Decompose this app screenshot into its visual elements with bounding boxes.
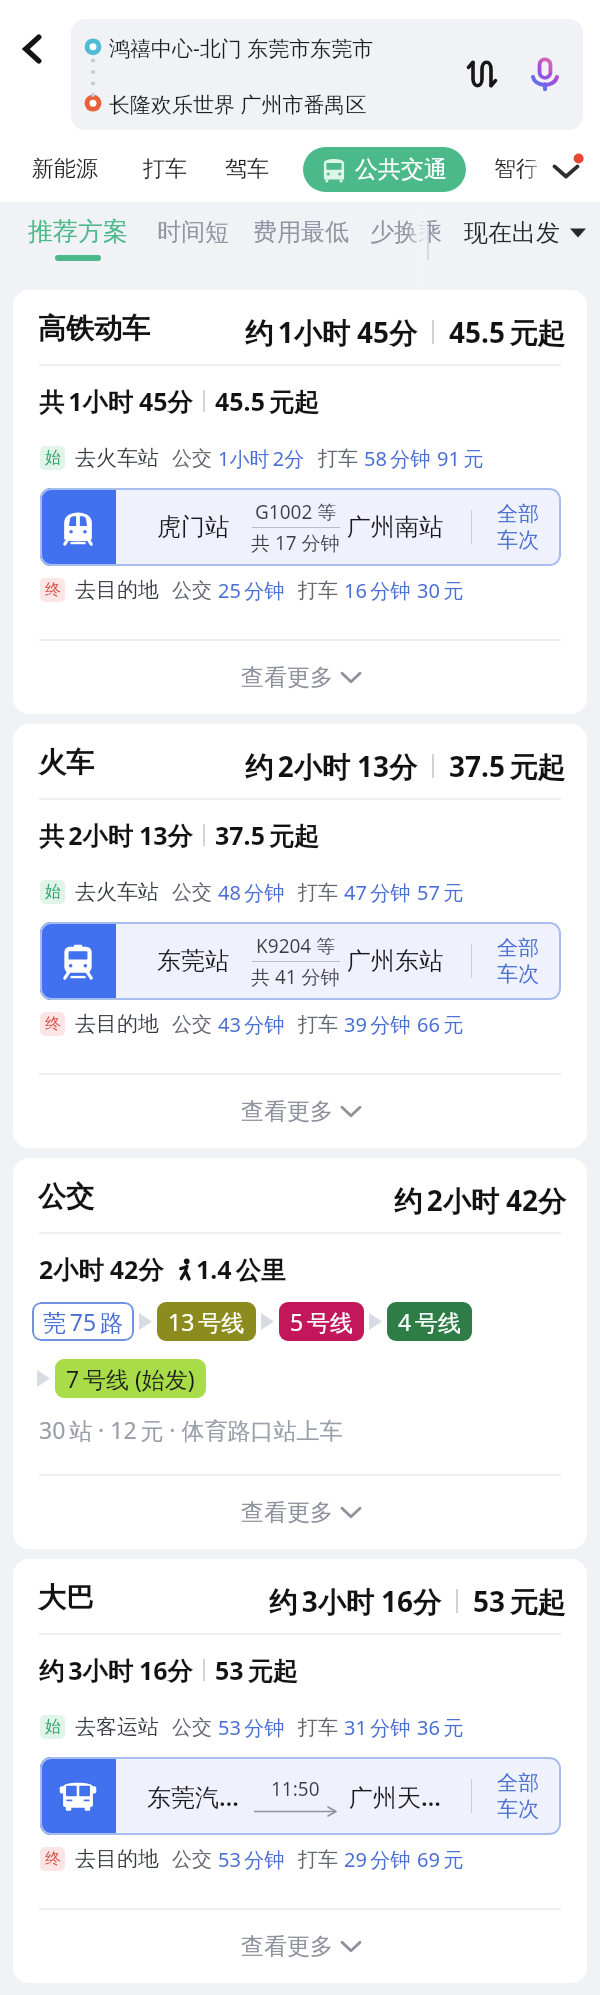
staticText: 30 站 · 12 元 · 体育路口站上车 [39,1414,343,1445]
button[interactable]: 虎门站 [40,488,561,566]
button[interactable]: 时间短 [157,217,229,247]
staticText: 去目的地 [75,577,159,603]
staticText: 11:50 [271,1776,320,1802]
staticText: 45.5 元起 [449,313,566,351]
staticText: 打车 [298,1715,338,1740]
staticText: 37.5 元起 [449,747,566,785]
staticText: 公共交通 [355,155,447,184]
staticText: 打车 [318,446,358,471]
button[interactable]: 费用最低 [253,217,349,247]
button[interactable]: 终 [13,566,587,614]
button[interactable]: 少换乘 [370,217,442,247]
staticText: K9204 等 [256,933,336,959]
button[interactable]: 东莞汽… [40,1757,561,1835]
staticText: 43 分钟 [218,1011,285,1038]
button[interactable]: 新能源 [32,155,98,183]
staticText: 查看更多 [241,663,333,692]
staticText: 打车 [298,880,338,905]
button[interactable]: 4 号线 [387,1302,472,1341]
button[interactable]: 大巴 [13,1559,587,1983]
staticText: 约 2小时 13分 [245,747,417,785]
button[interactable]: 查看更多 [13,1476,587,1549]
button[interactable]: 5 号线 [279,1302,364,1341]
staticText: 约 1小时 45分 [245,313,417,351]
button[interactable]: 终 [13,1000,587,1048]
button[interactable]: 打车 [143,155,187,183]
staticText: 7 号线 (始发) [66,1363,195,1394]
staticText: 约 2小时 42分 [394,1181,566,1219]
button[interactable]: 始 [13,434,587,482]
staticText: 去火车站 [75,879,159,905]
button[interactable]: 推荐方案 [28,216,128,261]
staticText: 1小时 2分 [218,445,305,472]
staticText: 公交 [172,446,212,471]
button[interactable]: 公交 [13,1158,587,1549]
staticText: 91 元 [437,445,484,472]
button[interactable]: 始 [13,868,587,916]
button[interactable]: 智行 [494,155,538,183]
staticText: 25 分钟 [218,577,285,604]
button[interactable]: 驾车 [225,155,269,183]
staticText: 约 3小时 16分 [269,1582,441,1620]
button[interactable]: 终 [13,1835,587,1883]
staticText: 共 17 分钟 [251,530,340,556]
staticText: 车次 [497,527,539,553]
staticText: 鸿禧中心-北门 东莞市东莞市 [109,34,374,63]
staticText: 东莞站 [157,946,229,976]
staticText: 37.5 元起 [215,818,320,852]
button[interactable]: 鸿禧中心-北门 东莞市东莞市 [71,19,583,130]
staticText: 车次 [497,961,539,987]
button[interactable]: Voice search [518,47,572,101]
staticText: 火车 [38,745,94,780]
staticText: 1.4 公里 [196,1252,286,1286]
staticText: 39 分钟 [344,1011,411,1038]
staticText: 全部 [497,501,539,527]
staticText: 共 1小时 45分 [39,384,193,418]
staticText: 查看更多 [241,1498,333,1527]
button[interactable]: 莞 75 路 [32,1302,134,1341]
staticText: 69 元 [417,1846,464,1873]
staticText: 莞 75 路 [43,1306,123,1337]
staticText: 30 元 [417,577,464,604]
staticText: 大巴 [38,1580,94,1615]
button[interactable]: 高铁动车 [13,290,587,714]
button[interactable]: 查看更多 [13,641,587,714]
staticText: 约 3小时 16分 [39,1653,193,1687]
button[interactable]: 东莞站 [40,922,561,1000]
button[interactable]: 查看更多 [13,1075,587,1148]
staticText: 去火车站 [75,445,159,471]
staticText: 58 分钟 [364,445,431,472]
button[interactable]: 13 号线 [157,1302,256,1341]
staticText: 4 号线 [398,1306,461,1337]
button[interactable]: Swap origin and destination [455,47,509,101]
staticText: 始 [45,882,61,902]
staticText: 53 分钟 [218,1714,285,1741]
staticText: 高铁动车 [38,311,150,346]
button[interactable]: 查看更多 [13,1910,587,1983]
staticText: 公交 [172,1715,212,1740]
staticText: 公交 [172,1012,212,1037]
staticText: 去目的地 [75,1846,159,1872]
staticText: 车次 [497,1796,539,1822]
staticText: 查看更多 [241,1932,333,1961]
button[interactable]: 始 [13,1703,587,1751]
staticText: 终 [45,580,61,600]
staticText: 公交 [172,1847,212,1872]
staticText: 公交 [172,578,212,603]
staticText: 13 号线 [168,1306,245,1337]
button[interactable]: 7 号线 (始发) [55,1359,206,1398]
staticText: 全部 [497,935,539,961]
staticText: 去目的地 [75,1011,159,1037]
button[interactable]: 公共交通 [303,147,466,192]
button[interactable]: 现在出发 [464,218,586,248]
staticText: 29 分钟 [344,1846,411,1873]
staticText: 57 元 [417,879,464,906]
staticText: 5 号线 [290,1306,353,1337]
button[interactable]: 火车 [13,724,587,1148]
button[interactable]: Back [5,21,61,77]
staticText: 查看更多 [241,1097,333,1126]
staticText: G1002 等 [255,499,337,525]
button[interactable]: Expand transport modes [540,144,592,196]
staticText: 2小时 42分 [39,1252,164,1286]
staticText: 53 元起 [215,1653,298,1687]
